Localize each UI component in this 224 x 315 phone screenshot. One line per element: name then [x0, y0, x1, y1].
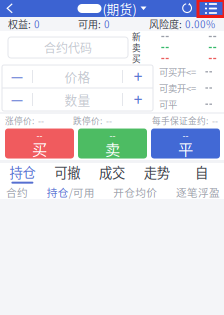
- staticText: 平: [178, 137, 193, 160]
- staticText: 卖: [132, 41, 141, 54]
- button[interactable]: 自: [179, 163, 224, 185]
- staticText: 走势: [144, 162, 170, 182]
- button[interactable]: 走势: [134, 163, 179, 185]
- staticText: 0: [104, 17, 110, 31]
- staticText: —: [11, 91, 23, 107]
- staticText: +: [133, 66, 142, 87]
- button[interactable]: Back: [0, 0, 20, 17]
- staticText: 可用:: [78, 17, 101, 31]
- button[interactable]: Refresh: [177, 0, 198, 17]
- staticText: 权益:: [8, 17, 31, 31]
- staticText: 可撤: [54, 162, 80, 182]
- staticText: 卖: [105, 137, 120, 160]
- staticText: /可用: [69, 184, 95, 200]
- staticText: 自: [195, 162, 208, 182]
- button[interactable]: Menu: [198, 0, 224, 16]
- staticText: 买: [32, 137, 47, 160]
- staticText: 买: [132, 52, 141, 65]
- staticText: --: [182, 129, 188, 142]
- staticText: 持仓: [47, 184, 69, 200]
- staticText: 跌停价: --: [73, 114, 112, 127]
- staticText: 开仓均价: [113, 184, 157, 200]
- staticText: 可卖开<=: [159, 81, 196, 95]
- button[interactable]: --: [5, 128, 74, 158]
- staticText: (期货): [102, 0, 136, 18]
- button[interactable]: Decrease 价格: [2, 65, 32, 87]
- button[interactable]: (期货): [77, 0, 146, 17]
- staticText: 风险度:: [149, 17, 182, 31]
- staticText: --: [36, 129, 42, 142]
- button[interactable]: Decrease 数量: [2, 88, 32, 110]
- button[interactable]: 成交: [90, 163, 134, 185]
- staticText: 新: [132, 30, 141, 43]
- button[interactable]: --: [151, 128, 220, 158]
- staticText: 0: [34, 17, 40, 31]
- staticText: 逐笔浮盈: [176, 184, 220, 200]
- staticText: 涨停价: --: [5, 114, 44, 127]
- staticText: --: [109, 129, 115, 142]
- staticText: 合约代码: [44, 39, 92, 56]
- staticText: 合约: [6, 184, 28, 200]
- button[interactable]: Increase 价格: [123, 65, 153, 87]
- staticText: 0.00%: [185, 17, 215, 31]
- staticText: 可平: [159, 97, 177, 111]
- staticText: 每手保证金约: --: [152, 114, 218, 127]
- staticText: 价格: [64, 67, 90, 86]
- staticText: 成交: [99, 162, 125, 182]
- staticText: —: [11, 68, 23, 84]
- staticText: 可买开<=: [159, 65, 196, 78]
- staticText: 持仓: [9, 162, 35, 182]
- button[interactable]: 持仓: [0, 163, 45, 185]
- button[interactable]: Increase 数量: [123, 88, 153, 110]
- staticText: 数量: [64, 90, 90, 109]
- button[interactable]: 可撤: [45, 163, 90, 185]
- staticText: +: [133, 89, 142, 110]
- button[interactable]: --: [78, 128, 147, 158]
